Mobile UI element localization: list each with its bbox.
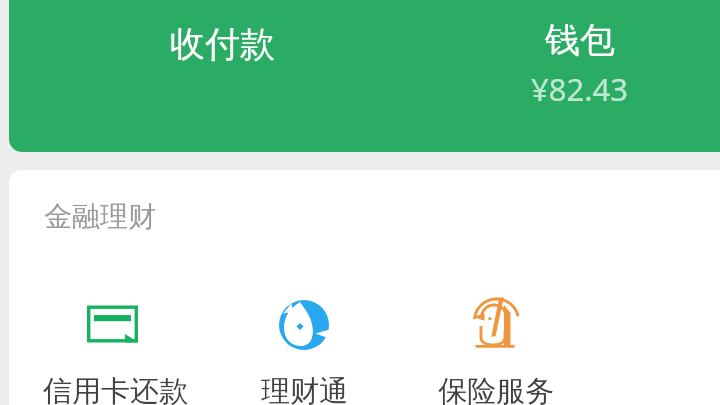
staticText: 信用卡还款 [43, 373, 188, 405]
staticText: 保险服务 [438, 373, 554, 405]
staticText: 金融理财 [44, 199, 156, 234]
button[interactable]: 理财通 [209, 291, 399, 405]
staticText: 钱包 [545, 18, 615, 62]
button[interactable]: 信用卡还款 [20, 291, 210, 405]
button[interactable]: 收付款 [160, 16, 285, 72]
staticText: 收付款 [170, 22, 275, 66]
staticText: 理财通 [261, 373, 348, 405]
staticText: ¥82.43 [531, 68, 628, 110]
button[interactable]: 钱包 [521, 14, 638, 114]
other: 保险服务 [468, 295, 524, 351]
button[interactable]: 保险服务 [401, 291, 591, 405]
other: 信用卡还款 [87, 295, 143, 351]
other: 理财通 [276, 295, 332, 351]
